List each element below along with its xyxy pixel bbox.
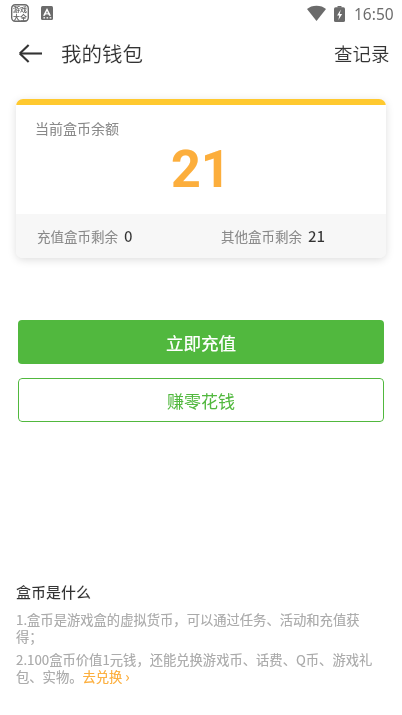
staticText: 我的钱包	[61, 38, 143, 68]
button[interactable]: 立即充值	[18, 320, 384, 364]
staticText: 1.盒币是游戏盒的虚拟货币，可以通过任务、活动和充值获 得；	[16, 610, 360, 646]
staticText: 立即充值	[166, 330, 236, 355]
staticText: 充值盒币剩余 0	[37, 225, 133, 247]
staticText: 其他盒币剩余 21	[221, 225, 326, 247]
button[interactable]: 赚零花钱	[18, 378, 384, 422]
staticText: 赚零花钱	[167, 388, 235, 413]
staticText: 查记录	[334, 40, 390, 67]
staticText: 盒币是什么	[16, 581, 92, 603]
staticText: 16:50	[354, 3, 394, 24]
staticText: 游戏 大全	[13, 4, 27, 22]
staticText: 2.100盒币价值1元钱，还能兑换游戏币、话费、Q币、游戏礼 包、实物。去兑换 …	[16, 650, 373, 686]
button[interactable]: 查记录	[322, 30, 402, 77]
staticText: 21	[171, 139, 231, 200]
button[interactable]: Back	[0, 26, 54, 80]
staticText: 当前盒币余额	[35, 118, 119, 138]
